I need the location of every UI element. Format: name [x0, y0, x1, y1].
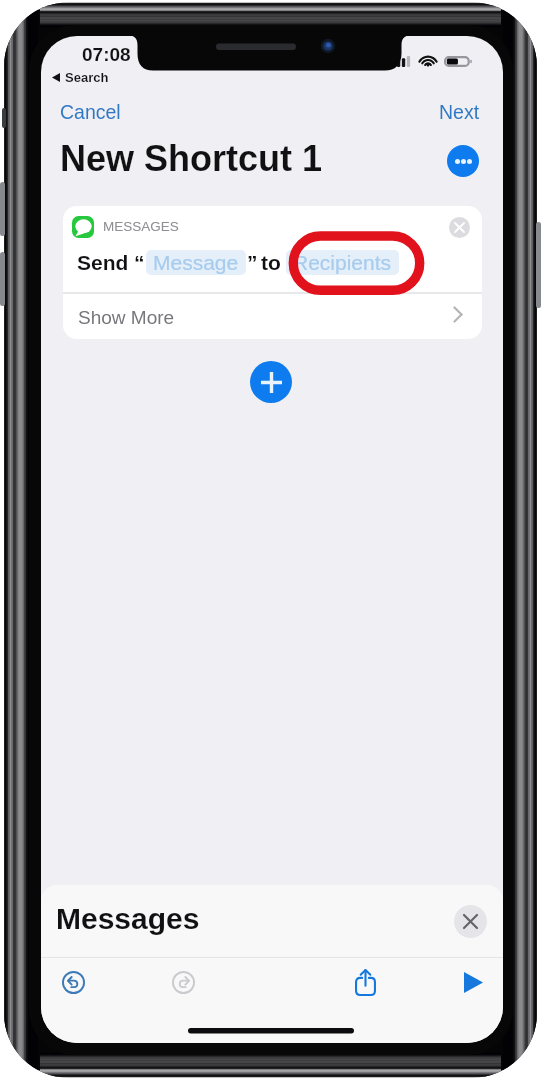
button[interactable]: Remove action [449, 217, 470, 238]
button[interactable]: Add action [250, 361, 292, 403]
button[interactable]: Message [146, 250, 246, 275]
staticText: Next [439, 101, 480, 123]
button[interactable]: Show More [63, 294, 482, 339]
button[interactable]: Recipients [286, 250, 399, 275]
button[interactable]: Cancel [52, 96, 129, 128]
button[interactable]: Search [50, 68, 111, 87]
staticText: Search [65, 70, 109, 85]
staticText: MESSAGES [103, 219, 179, 234]
button[interactable]: Close [454, 905, 487, 938]
staticText: “ [134, 251, 145, 274]
staticText: to [261, 251, 281, 274]
staticText: Cancel [60, 101, 121, 123]
staticText: ” [247, 251, 258, 274]
button[interactable]: Redo [168, 967, 198, 997]
staticText: New Shortcut 1 [60, 138, 323, 178]
staticText: Messages [56, 902, 200, 936]
button[interactable]: Share [350, 967, 380, 997]
button[interactable]: Next [431, 96, 488, 128]
button[interactable]: More options [447, 145, 479, 177]
button[interactable]: Run [458, 967, 488, 997]
staticText: Recipients [293, 251, 392, 274]
staticText: 07:08 [82, 44, 131, 65]
staticText: Message [153, 251, 239, 274]
staticText: Show More [78, 307, 175, 328]
button[interactable]: Undo [58, 967, 88, 997]
staticText: Send [77, 251, 129, 274]
